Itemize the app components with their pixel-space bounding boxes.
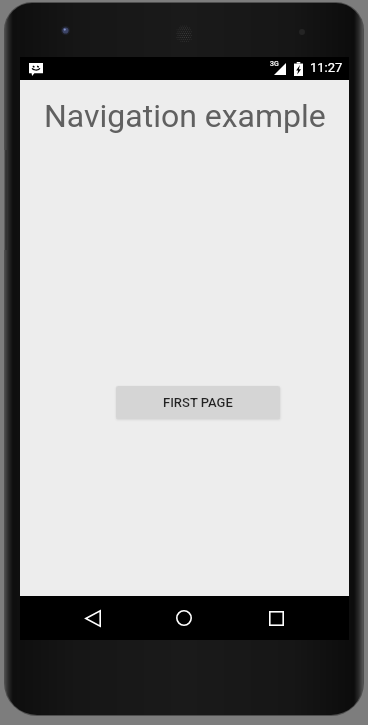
button[interactable]: FIRST PAGE (116, 386, 280, 419)
staticText: 3G (270, 60, 279, 68)
staticText: 11:27 (310, 60, 343, 75)
button[interactable]: Recents (252, 596, 300, 640)
button[interactable]: Home (160, 596, 208, 640)
button[interactable]: Back (69, 596, 117, 640)
staticText: FIRST PAGE (163, 395, 233, 410)
staticText: Navigation example (44, 97, 326, 135)
